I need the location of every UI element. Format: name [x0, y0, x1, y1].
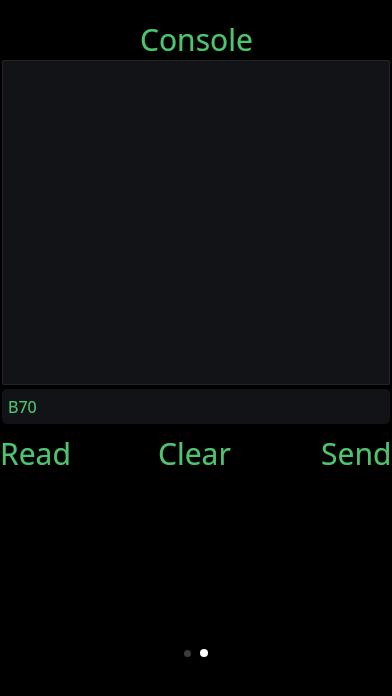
staticText: Clear	[158, 433, 231, 474]
staticText: Console	[140, 19, 253, 60]
staticText: B70	[8, 396, 37, 418]
button[interactable]: Send	[321, 433, 392, 474]
staticText: Read	[0, 433, 71, 474]
button[interactable]: Command input	[2, 389, 390, 424]
staticText: Send	[321, 433, 392, 474]
button[interactable]: Clear	[158, 433, 231, 474]
button[interactable]: Page 1	[184, 650, 191, 657]
button[interactable]: Page 2	[200, 649, 208, 657]
button[interactable]: Read	[0, 433, 71, 474]
